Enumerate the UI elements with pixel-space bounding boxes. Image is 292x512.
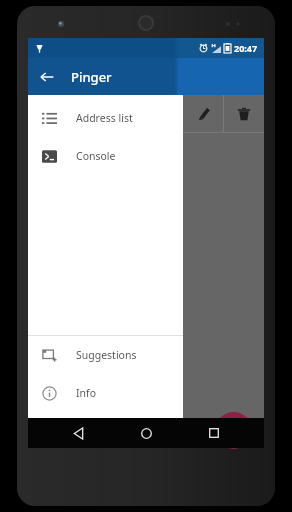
button[interactable]: Edit <box>183 95 223 132</box>
button[interactable]: Delete <box>224 95 264 132</box>
staticText: 20:47 <box>234 42 258 54</box>
staticText: Address list <box>76 111 133 125</box>
button[interactable]: Back <box>28 58 65 95</box>
button[interactable]: Home <box>128 418 164 448</box>
button[interactable]: Info <box>28 374 183 412</box>
staticText: Pinger <box>71 68 112 86</box>
staticText: Suggestions <box>76 348 137 362</box>
button[interactable]: Address list <box>28 99 183 137</box>
staticText: Console <box>76 149 116 163</box>
button[interactable]: Suggestions <box>28 336 183 374</box>
button[interactable]: Add <box>215 412 252 449</box>
button[interactable]: Back <box>60 418 96 448</box>
button[interactable]: Console <box>28 137 183 175</box>
staticText: Info <box>76 386 97 400</box>
button[interactable]: Recent apps <box>196 418 232 448</box>
